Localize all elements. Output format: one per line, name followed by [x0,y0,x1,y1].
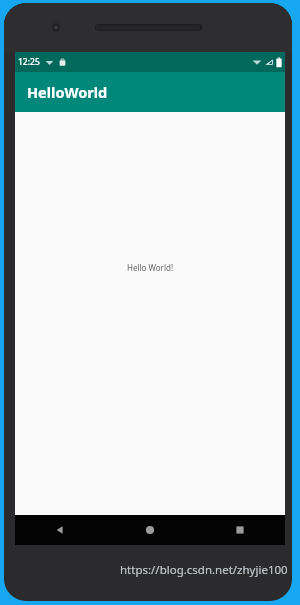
button[interactable]: Home [105,515,195,545]
staticText: Hello World! [127,262,174,273]
staticText: https://blog.csdn.net/zhyjie100 [120,562,288,578]
staticText: HelloWorld [27,82,108,102]
button[interactable]: Back [15,515,105,545]
button[interactable]: Recent apps [195,515,285,545]
staticText: 12:25 [18,56,40,68]
button[interactable]: HelloWorld [15,72,285,112]
